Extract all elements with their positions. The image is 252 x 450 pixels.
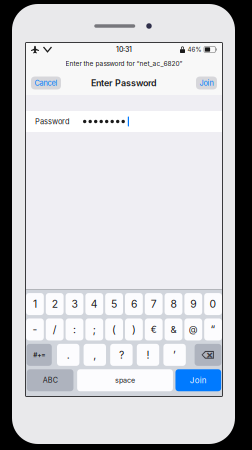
staticText: 5 [111,298,117,310]
button[interactable]: 3 [66,293,83,315]
staticText: Enter the password for “net_ac_6820” [65,59,182,67]
button[interactable]: ABC [27,369,73,391]
button[interactable]: : [66,318,83,340]
button[interactable]: / [46,318,64,340]
staticText: ? [119,349,124,361]
staticText: #+= [33,351,45,359]
button[interactable]: 2 [46,293,64,315]
staticText: 8 [170,298,176,310]
button[interactable]: . [57,344,79,366]
staticText: 0 [210,298,217,310]
staticText: 9 [190,298,196,310]
staticText: 7 [151,298,157,310]
staticText: ’ [173,349,176,361]
button[interactable]: ) [125,318,143,340]
staticText: € [151,324,157,335]
button[interactable]: ( [105,318,123,340]
button[interactable]: #+= [27,344,52,366]
button[interactable]: Delete [195,344,221,366]
staticText: Cancel [34,79,57,87]
staticText: 4 [91,298,98,310]
staticText: Join [190,375,207,385]
button[interactable]: ; [85,318,103,340]
staticText: @ [189,324,198,335]
staticText: - [32,323,37,336]
button[interactable]: 4 [85,293,103,315]
button[interactable]: 6 [125,293,143,315]
staticText: space [115,376,135,385]
staticText: ; [93,323,96,336]
staticText: 10:31 [116,45,132,54]
staticText: , [93,349,96,361]
staticText: 6 [131,298,137,310]
staticText: 2 [52,298,58,310]
button[interactable]: , [84,344,106,366]
button[interactable]: ! [137,344,159,366]
staticText: ABC [43,376,58,385]
button[interactable]: “ [204,318,222,340]
button[interactable]: Cancel [31,77,61,89]
button[interactable]: ’ [163,344,186,366]
staticText: ) [132,323,136,336]
button[interactable]: - [26,318,44,340]
button[interactable]: 9 [184,293,202,315]
staticText: . [67,349,70,361]
staticText: × [206,348,213,361]
button[interactable]: 1 [26,293,44,315]
staticText: Enter Password [91,78,157,88]
staticText: Password [35,117,70,126]
staticText: & [170,324,176,335]
staticText: / [53,323,57,336]
staticText: “ [211,323,216,336]
staticText: ( [112,323,116,336]
staticText: 46% [187,46,201,53]
button[interactable]: 7 [145,293,163,315]
staticText: Join [199,79,213,87]
staticText: : [73,323,76,336]
button[interactable]: 8 [165,293,182,315]
button[interactable]: 0 [204,293,222,315]
button[interactable]: & [165,318,182,340]
staticText: 1 [33,298,37,310]
button[interactable]: Join [175,369,221,391]
button[interactable]: Join [196,77,217,89]
button[interactable]: ? [110,344,133,366]
staticText: 3 [71,298,77,310]
button[interactable]: @ [184,318,202,340]
button[interactable]: 5 [105,293,123,315]
button[interactable]: space [77,369,173,391]
staticText: ! [146,349,149,361]
button[interactable]: € [145,318,163,340]
